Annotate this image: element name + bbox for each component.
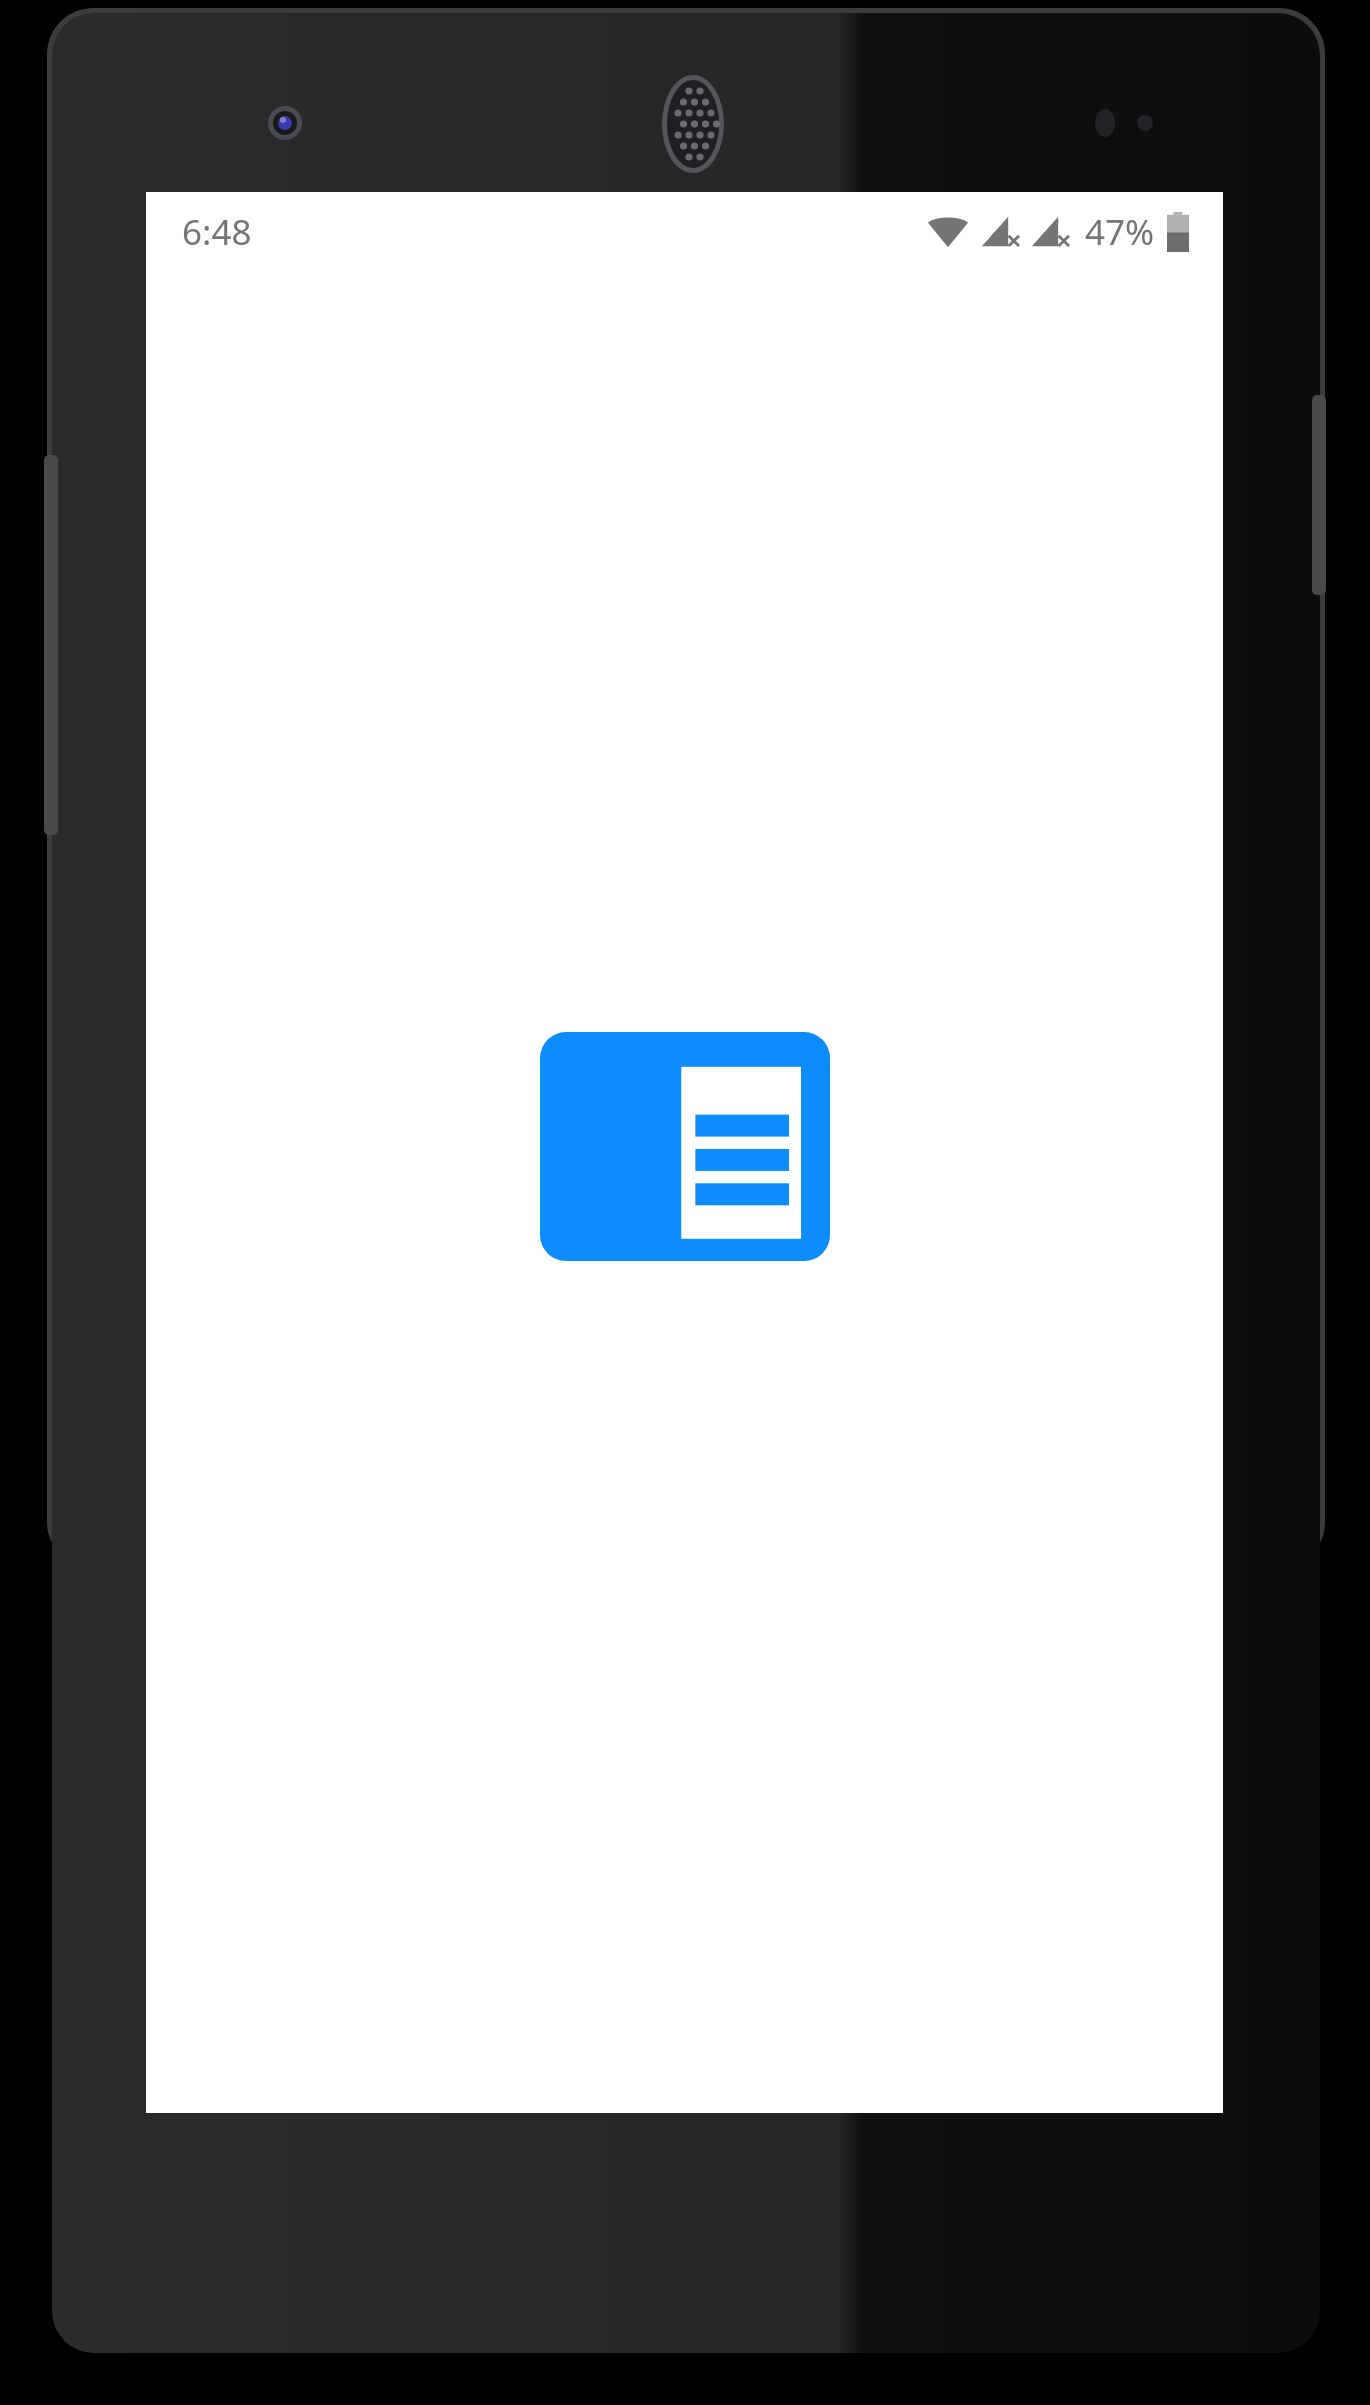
button[interactable]: News app icon [540, 1032, 830, 1261]
other: Volume [44, 455, 58, 835]
staticText: 47% [1085, 208, 1155, 256]
other: Power [1312, 395, 1326, 595]
staticText: 6:48 [182, 208, 252, 256]
